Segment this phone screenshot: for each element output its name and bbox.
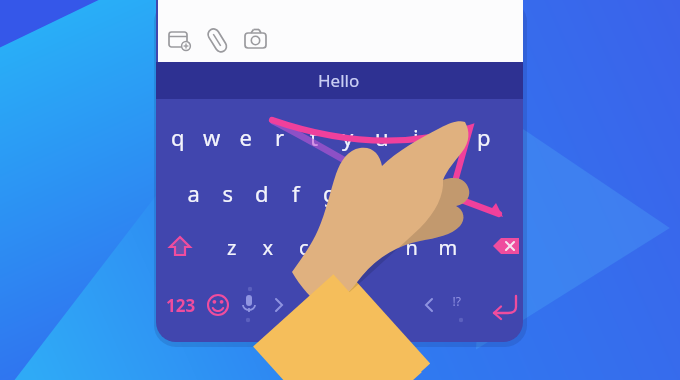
button[interactable]: Swipe typing keyboard illustration	[0, 0, 680, 380]
